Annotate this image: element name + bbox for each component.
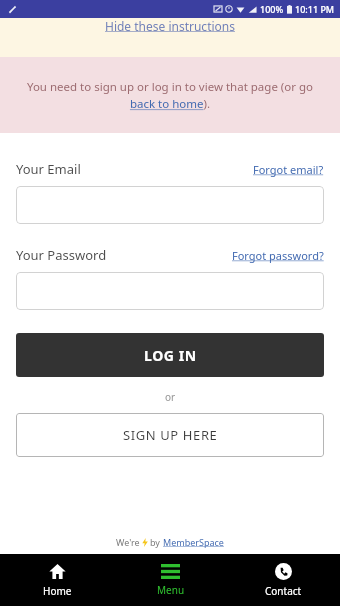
staticText: or [0, 390, 340, 404]
button[interactable]: Home [0, 554, 114, 606]
button[interactable]: SIGN UP HERE [16, 413, 324, 457]
staticText: You need to sign up or log in to view th… [14, 79, 326, 112]
button[interactable]: Forgot email? [253, 162, 324, 177]
button[interactable]: Your Email [16, 186, 324, 224]
button[interactable]: Contact [227, 554, 340, 606]
staticText: Home [43, 584, 72, 598]
staticText: Hide these instructions [105, 18, 235, 34]
staticText: Contact [265, 584, 302, 598]
button[interactable]: Your Password [16, 272, 324, 310]
staticText: Forgot email? [253, 162, 324, 177]
staticText: 100% [260, 3, 284, 15]
staticText: Forgot password? [232, 248, 324, 263]
button[interactable]: Forgot password? [232, 248, 324, 263]
staticText: 10:11 PM [295, 3, 335, 15]
staticText: We're [116, 536, 140, 548]
staticText: Menu [157, 583, 185, 597]
staticText: MemberSpace [163, 536, 224, 548]
button[interactable]: Menu [114, 554, 227, 606]
staticText: Your Email [16, 160, 81, 178]
staticText: LOG IN [144, 346, 197, 365]
button[interactable]: MemberSpace [163, 536, 224, 548]
staticText: Your Password [16, 246, 107, 264]
staticText: by [150, 536, 160, 548]
button[interactable]: LOG IN [16, 333, 324, 377]
button[interactable]: Hide these instructions [105, 18, 235, 34]
staticText: SIGN UP HERE [123, 426, 218, 444]
